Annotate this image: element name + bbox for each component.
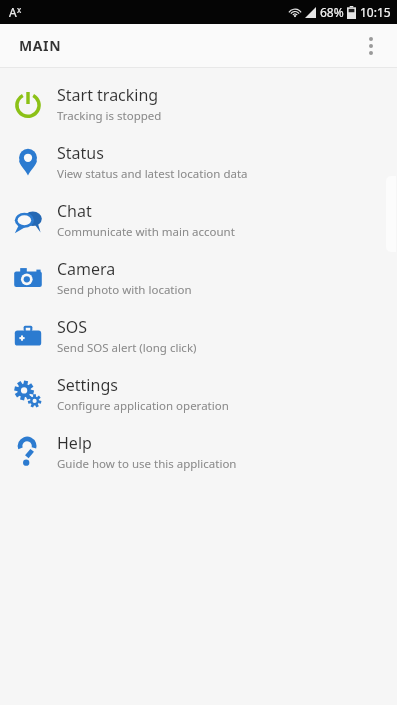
staticText: MAIN [19,36,62,55]
button[interactable]: Status [0,133,397,191]
button[interactable]: More options [351,26,391,66]
staticText: Send photo with location [57,282,192,298]
staticText: Camera [57,258,116,280]
staticText: View status and latest location data [57,166,248,182]
button[interactable]: Settings [0,365,397,423]
button[interactable]: Camera [0,249,397,307]
staticText: Configure application operation [57,398,229,414]
button[interactable]: Help [0,423,397,481]
button[interactable]: Chat [0,191,397,249]
staticText: Communicate with main account [57,224,235,240]
staticText: SOS [57,316,88,338]
button[interactable]: Start tracking [0,75,397,133]
staticText: Guide how to use this application [57,456,237,472]
staticText: Send SOS alert (long click) [57,340,197,356]
button[interactable]: SOS [0,307,397,365]
staticText: Start tracking [57,84,159,106]
staticText: Help [57,432,92,454]
staticText: Tracking is stopped [57,108,162,124]
staticText: x [17,4,22,15]
staticText: Status [57,142,104,164]
staticText: 68% [320,4,344,20]
staticText: Chat [57,200,92,222]
staticText: A [9,4,17,20]
staticText: Settings [57,374,118,396]
staticText: 10:15 [360,4,391,20]
